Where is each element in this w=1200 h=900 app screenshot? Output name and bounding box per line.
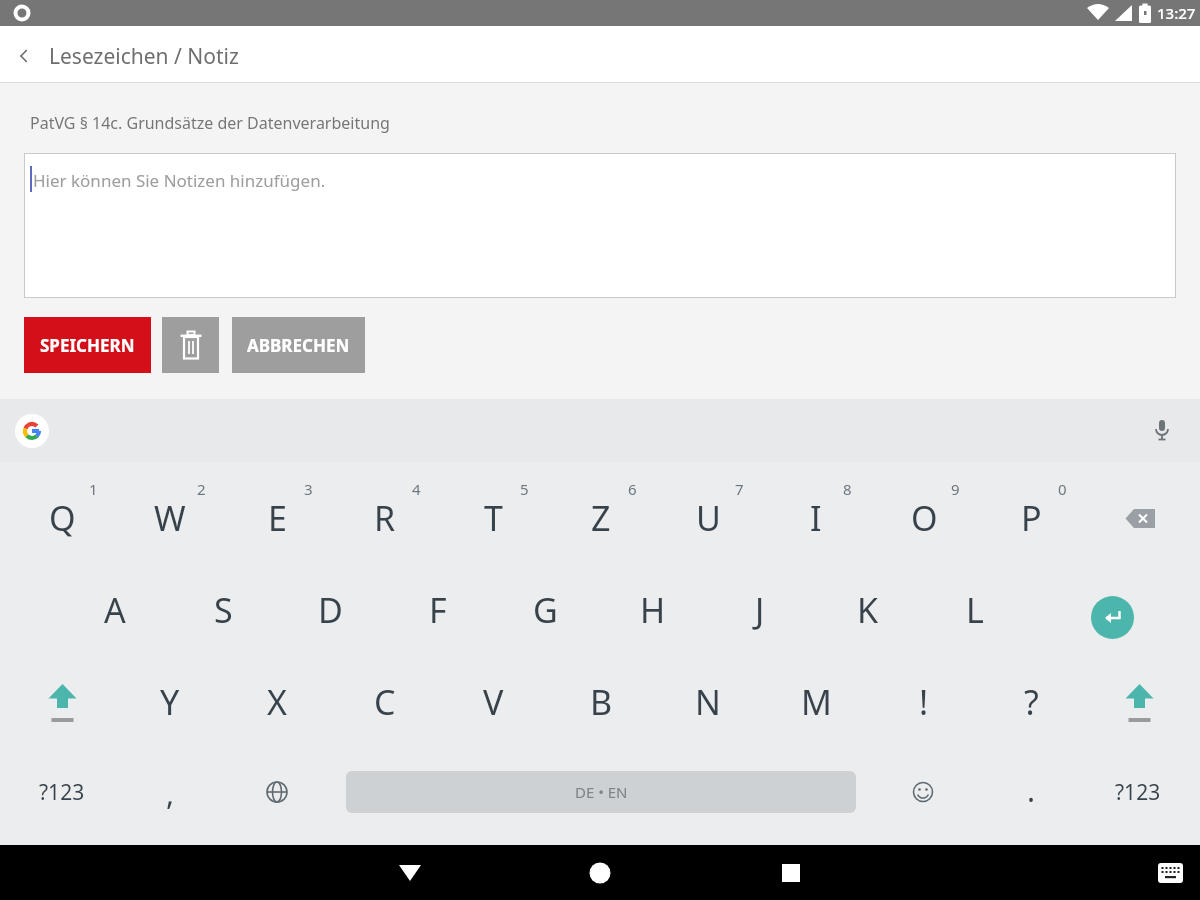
button[interactable]: ?: [991, 658, 1071, 746]
staticText: V: [483, 679, 504, 725]
staticText: A: [104, 587, 126, 633]
button[interactable]: [237, 748, 317, 836]
button[interactable]: M: [776, 658, 856, 746]
staticText: 1: [89, 479, 98, 499]
button[interactable]: I: [776, 474, 856, 562]
staticText: Y: [160, 679, 180, 725]
button[interactable]: [560, 845, 640, 900]
staticText: G: [533, 587, 558, 633]
staticText: PatVG § 14c. Grundsätze der Datenverarbe…: [30, 112, 390, 134]
button[interactable]: [370, 845, 450, 900]
button[interactable]: ABBRECHEN: [232, 317, 365, 373]
button[interactable]: ?123: [1093, 748, 1183, 836]
staticText: ABBRECHEN: [247, 334, 350, 357]
staticText: J: [755, 587, 765, 633]
staticText: 0: [1058, 479, 1067, 499]
button[interactable]: L: [935, 566, 1015, 654]
button[interactable]: [0, 32, 48, 80]
staticText: U: [696, 495, 721, 541]
button[interactable]: K: [828, 566, 908, 654]
staticText: B: [590, 679, 613, 725]
button[interactable]: A: [75, 566, 155, 654]
button[interactable]: [15, 414, 49, 448]
button[interactable]: J: [720, 566, 800, 654]
button[interactable]: [1099, 658, 1179, 746]
staticText: DE • EN: [575, 782, 628, 802]
staticText: P: [1021, 495, 1042, 541]
button[interactable]: DE • EN: [346, 771, 856, 813]
staticText: .: [1027, 770, 1036, 811]
button[interactable]: R: [345, 474, 425, 562]
staticText: 5: [520, 479, 529, 499]
button[interactable]: [1140, 845, 1200, 900]
staticText: M: [801, 679, 832, 725]
staticText: 2: [197, 479, 206, 499]
button[interactable]: ,: [130, 749, 210, 837]
button[interactable]: Q: [22, 474, 102, 562]
staticText: O: [911, 495, 938, 541]
button[interactable]: P: [991, 474, 1071, 562]
staticText: X: [267, 679, 287, 725]
button[interactable]: H: [613, 566, 693, 654]
button[interactable]: U: [668, 474, 748, 562]
staticText: ?123: [39, 778, 85, 807]
staticText: E: [268, 495, 287, 541]
staticText: 3: [304, 479, 313, 499]
staticText: I: [810, 495, 822, 541]
button[interactable]: !: [884, 658, 964, 746]
staticText: Lesezeichen / Notiz: [49, 42, 239, 71]
button[interactable]: [1091, 596, 1134, 639]
staticText: Hier können Sie Notizen hinzufügen.: [33, 169, 326, 192]
button[interactable]: [22, 658, 102, 746]
button[interactable]: V: [453, 658, 533, 746]
button[interactable]: B: [561, 658, 641, 746]
button[interactable]: N: [668, 658, 748, 746]
staticText: H: [640, 587, 666, 633]
button[interactable]: [1100, 474, 1180, 562]
button[interactable]: Y: [130, 658, 210, 746]
button[interactable]: [1140, 409, 1184, 453]
staticText: ?123: [1115, 778, 1161, 807]
staticText: S: [214, 587, 233, 633]
button[interactable]: W: [130, 474, 210, 562]
staticText: 13:27: [1157, 3, 1196, 23]
staticText: Q: [49, 495, 76, 541]
button[interactable]: .: [991, 746, 1071, 834]
staticText: C: [374, 679, 396, 725]
staticText: Z: [591, 495, 611, 541]
staticText: D: [318, 587, 343, 633]
button[interactable]: T: [453, 474, 533, 562]
staticText: W: [154, 495, 186, 541]
staticText: 8: [843, 479, 852, 499]
staticText: !: [919, 679, 929, 725]
button[interactable]: D: [290, 566, 370, 654]
button[interactable]: ?123: [17, 748, 107, 836]
staticText: N: [695, 679, 721, 725]
staticText: SPEICHERN: [40, 334, 135, 357]
staticText: ?: [1024, 679, 1039, 725]
staticText: R: [374, 495, 396, 541]
button[interactable]: [751, 845, 831, 900]
staticText: 7: [735, 479, 744, 499]
button[interactable]: S: [183, 566, 263, 654]
staticText: T: [484, 495, 503, 541]
staticText: L: [966, 587, 984, 633]
button[interactable]: [162, 317, 219, 373]
button[interactable]: [883, 748, 963, 836]
staticText: F: [429, 587, 447, 633]
button[interactable]: G: [505, 566, 585, 654]
staticText: 4: [412, 479, 421, 499]
button[interactable]: F: [398, 566, 478, 654]
button[interactable]: Z: [561, 474, 641, 562]
staticText: 6: [628, 479, 637, 499]
staticText: K: [857, 587, 879, 633]
button[interactable]: X: [237, 658, 317, 746]
staticText: ,: [166, 773, 175, 814]
button[interactable]: O: [884, 474, 964, 562]
staticText: 9: [951, 479, 960, 499]
button[interactable]: SPEICHERN: [24, 317, 151, 373]
button[interactable]: E: [237, 474, 317, 562]
button[interactable]: C: [345, 658, 425, 746]
